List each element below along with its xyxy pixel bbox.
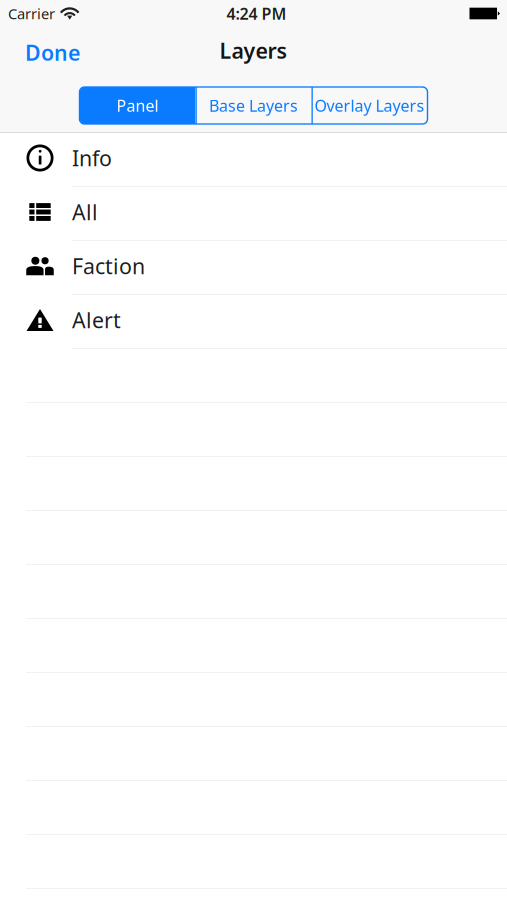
button[interactable]: Base Layers xyxy=(195,87,311,124)
staticText: Panel xyxy=(116,95,158,116)
button[interactable]: Done xyxy=(16,27,89,72)
staticText: Info xyxy=(72,144,112,172)
staticText: Overlay Layers xyxy=(314,95,424,116)
button[interactable]: Faction xyxy=(0,241,507,295)
button[interactable]: Info xyxy=(0,133,507,187)
staticText: Layers xyxy=(219,36,287,65)
button[interactable]: Overlay Layers xyxy=(311,87,427,124)
staticText: Faction xyxy=(72,252,145,280)
staticText: 4:24 PM xyxy=(226,3,286,24)
staticText: Alert xyxy=(72,306,121,334)
staticText: Carrier xyxy=(8,4,55,23)
button[interactable]: Panel xyxy=(79,87,195,124)
staticText: All xyxy=(72,198,98,226)
button[interactable]: Alert xyxy=(0,295,507,349)
button[interactable]: All xyxy=(0,187,507,241)
staticText: Base Layers xyxy=(209,95,298,116)
staticText: Done xyxy=(25,38,80,67)
